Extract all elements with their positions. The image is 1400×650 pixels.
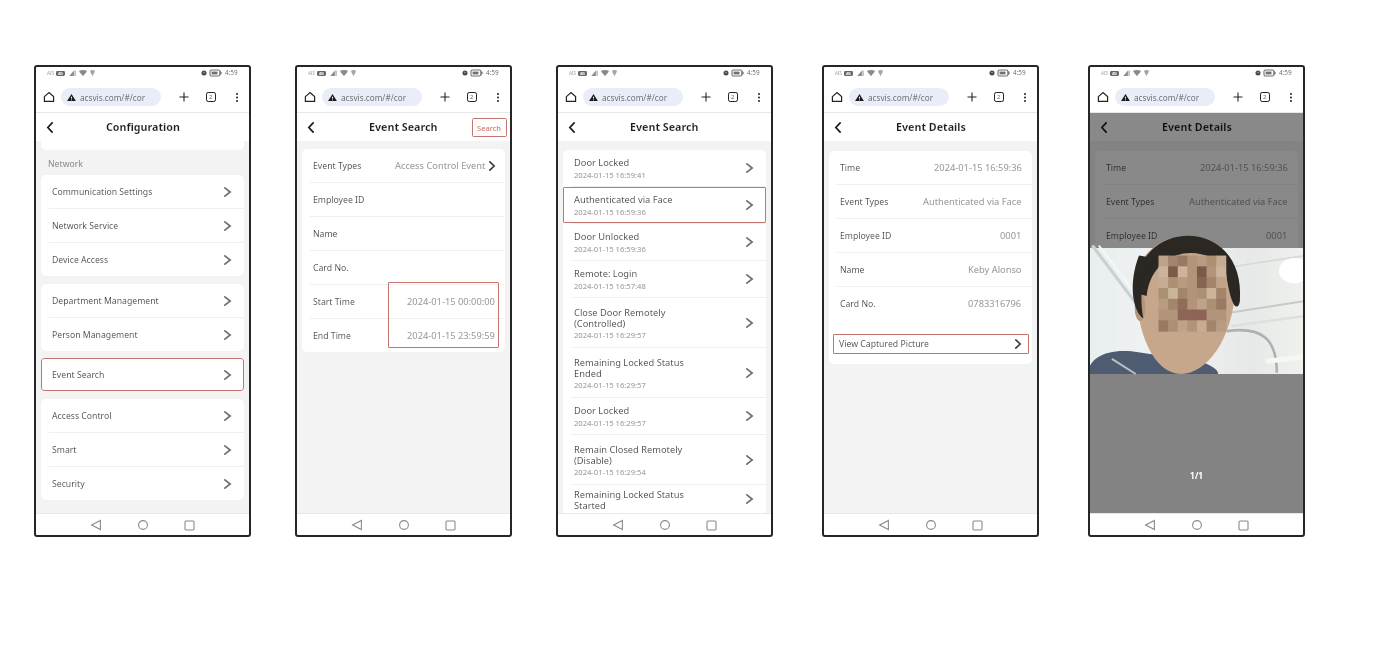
button[interactable]: More options (1286, 92, 1296, 102)
staticText: End Time (313, 330, 351, 342)
button[interactable]: Door Locked (563, 150, 766, 186)
button[interactable]: Tabs (994, 92, 1004, 102)
button[interactable]: Name (302, 217, 505, 250)
staticText: View Captured Picture (1105, 338, 1195, 350)
button[interactable]: Back (875, 516, 893, 534)
button[interactable]: Name (1095, 253, 1298, 286)
button[interactable]: Card No. (302, 251, 505, 284)
button[interactable]: Home (303, 90, 317, 104)
button[interactable]: More options (754, 92, 764, 102)
button[interactable]: More options (493, 92, 503, 102)
button[interactable]: End Time (302, 319, 505, 352)
button[interactable]: Home (564, 90, 578, 104)
staticText: AIS (835, 70, 843, 76)
staticText: Event Details (896, 120, 966, 135)
button[interactable]: Tabs (206, 92, 216, 102)
button[interactable]: Door Locked (563, 398, 766, 434)
button[interactable]: Employee ID (829, 219, 1032, 252)
button[interactable]: Search (472, 118, 507, 137)
button[interactable]: Remote: Login (563, 261, 766, 297)
button[interactable]: New tab (177, 90, 190, 103)
button[interactable]: Event Search (41, 358, 244, 391)
staticText: acsvis.com/#/cor (341, 92, 407, 103)
button[interactable]: Card No. (829, 287, 1032, 320)
button[interactable]: Time (829, 151, 1032, 184)
button[interactable]: Employee ID (302, 183, 505, 216)
button[interactable]: Person Management (41, 318, 244, 351)
staticText: Event Search (52, 369, 105, 381)
button[interactable]: Tabs (467, 92, 477, 102)
button[interactable]: Home (42, 90, 56, 104)
button[interactable]: Card No. (1095, 287, 1298, 320)
button[interactable]: Home (1096, 90, 1110, 104)
button[interactable]: Event Types (829, 185, 1032, 218)
button[interactable]: New tab (1231, 90, 1244, 103)
staticText: 2024-01-15 16:29:57 (574, 330, 646, 340)
button[interactable]: Recents (968, 516, 986, 534)
button[interactable]: Home (1188, 516, 1206, 534)
button[interactable]: Home (395, 516, 413, 534)
button[interactable]: Door Unlocked (563, 224, 766, 260)
button[interactable]: Close Door Remotely (Controlled) (563, 298, 766, 347)
button[interactable]: Remaining Locked Status Started (563, 485, 766, 513)
staticText: 0783316796 (968, 297, 1022, 310)
button[interactable]: Department Management (41, 284, 244, 317)
button[interactable]: Security (41, 467, 244, 500)
button[interactable]: Home (656, 516, 674, 534)
button[interactable]: Remaining Locked Status Ended (563, 348, 766, 397)
button[interactable]: Back (41, 118, 59, 136)
button[interactable]: Recents (441, 516, 459, 534)
button[interactable]: Home (134, 516, 152, 534)
button[interactable]: Recents (1234, 516, 1252, 534)
staticText: 4G (580, 71, 585, 76)
button[interactable]: Back (1095, 118, 1113, 136)
button[interactable]: New tab (965, 90, 978, 103)
staticText: AIS (1101, 70, 1109, 76)
button[interactable]: Tabs (728, 92, 738, 102)
button[interactable]: View Captured Picture (833, 334, 1029, 354)
button[interactable]: acsvis.com/#/cor (1115, 88, 1215, 106)
button[interactable]: acsvis.com/#/cor (849, 88, 949, 106)
button[interactable]: Tabs (1260, 92, 1270, 102)
button[interactable]: Home (830, 90, 844, 104)
button[interactable]: Back (563, 118, 581, 136)
staticText: 2024-01-15 16:59:36 (934, 161, 1022, 174)
button[interactable]: Event Types (302, 149, 505, 182)
staticText: Name (840, 264, 865, 276)
staticText: Door Unlocked (574, 230, 640, 243)
button[interactable]: Recents (702, 516, 720, 534)
button[interactable]: More options (232, 92, 242, 102)
button[interactable]: Smart (41, 433, 244, 466)
button[interactable]: Back (1141, 516, 1159, 534)
button[interactable]: Network Service (41, 209, 244, 242)
button[interactable]: Back (348, 516, 366, 534)
button[interactable]: Employee ID (1095, 219, 1298, 252)
staticText: Security (52, 478, 85, 490)
button[interactable]: View Captured Picture (1099, 334, 1295, 354)
button[interactable]: Communication Settings (41, 175, 244, 208)
button[interactable]: Time (1095, 151, 1298, 184)
button[interactable]: Back (609, 516, 627, 534)
staticText: 2 (731, 93, 735, 101)
button[interactable]: acsvis.com/#/cor (583, 88, 683, 106)
button[interactable]: Access Control (41, 399, 244, 432)
button[interactable]: Event Types (1095, 185, 1298, 218)
button[interactable]: Authenticated via Face (563, 187, 766, 223)
button[interactable]: Back (829, 118, 847, 136)
button[interactable]: Start Time (302, 285, 505, 318)
button[interactable]: Remain Closed Remotely (Disable) (563, 435, 766, 484)
button[interactable]: More options (1020, 92, 1030, 102)
button[interactable]: Device Access (41, 243, 244, 276)
button[interactable]: Recents (180, 516, 198, 534)
button[interactable]: Back (302, 118, 320, 136)
button[interactable]: New tab (699, 90, 712, 103)
button[interactable]: Home (922, 516, 940, 534)
button[interactable]: acsvis.com/#/cor (61, 88, 161, 106)
button[interactable]: Back (87, 516, 105, 534)
button[interactable]: Name (829, 253, 1032, 286)
staticText: Remaining Locked Status Ended (574, 356, 684, 379)
staticText: Start Time (313, 296, 355, 308)
button[interactable]: New tab (438, 90, 451, 103)
button[interactable]: acsvis.com/#/cor (322, 88, 422, 106)
staticText: Door Locked (574, 156, 630, 169)
